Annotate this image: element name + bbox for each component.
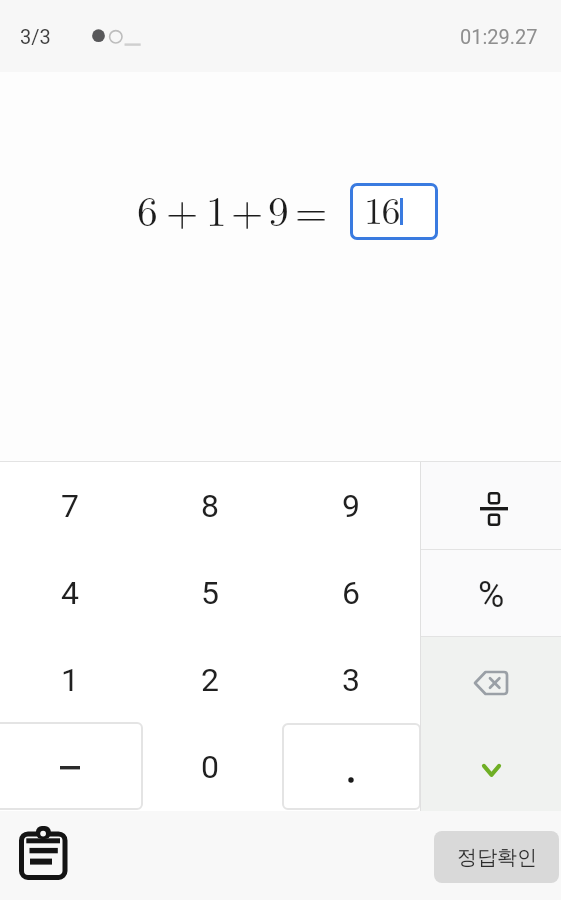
staticText: =	[295, 179, 328, 237]
button[interactable]	[421, 637, 561, 724]
staticText: 정답확인	[457, 845, 537, 870]
staticText: %	[478, 574, 505, 616]
staticText: 8	[201, 487, 219, 525]
button[interactable]	[282, 723, 421, 810]
staticText: 5	[201, 574, 219, 612]
staticText: 16	[364, 181, 400, 235]
staticText: 1	[61, 661, 79, 699]
button[interactable]: 5	[140, 549, 280, 636]
button[interactable]: 3	[281, 636, 421, 723]
staticText: 01:29.27	[460, 25, 538, 48]
button[interactable]: 4	[0, 549, 140, 636]
button[interactable]: 2	[140, 636, 280, 723]
staticText: 6	[137, 179, 158, 237]
staticText: 9	[342, 487, 360, 525]
staticText: +	[231, 179, 264, 237]
staticText: 0	[201, 748, 219, 786]
button[interactable]	[14, 820, 74, 888]
button[interactable]: 정답확인	[434, 831, 559, 883]
button[interactable]	[0, 722, 143, 810]
button[interactable]: 16	[350, 183, 438, 240]
staticText: 4	[61, 574, 79, 612]
button[interactable]: 6	[281, 549, 421, 636]
staticText: 7	[61, 487, 79, 525]
button[interactable]: 9	[281, 462, 421, 549]
staticText: 1	[206, 179, 227, 237]
staticText: 3/3	[20, 25, 51, 48]
button[interactable]: %	[421, 550, 561, 636]
staticText: 2	[201, 661, 219, 699]
button[interactable]: 1	[0, 636, 140, 723]
staticText: 6	[342, 574, 360, 612]
button[interactable]: 7	[0, 462, 140, 549]
button[interactable]	[421, 462, 561, 549]
staticText: 3	[342, 661, 360, 699]
button[interactable]	[421, 724, 561, 811]
staticText: 9	[268, 179, 289, 237]
staticText: +	[166, 179, 199, 237]
button[interactable]: 8	[140, 462, 280, 549]
button[interactable]: 0	[140, 723, 280, 810]
